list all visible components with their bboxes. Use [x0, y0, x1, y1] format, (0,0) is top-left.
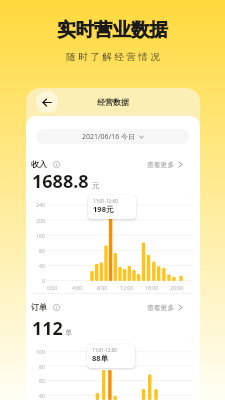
staticText: 112 — [32, 316, 63, 341]
staticText: 200 — [36, 217, 45, 224]
staticText: 随时了解经营情况 — [65, 51, 161, 63]
staticText: 单 — [65, 328, 73, 337]
staticText: 订单 — [31, 302, 47, 312]
staticText: 8:00 — [97, 284, 108, 291]
staticText: 11:01-12:00 — [93, 198, 118, 204]
staticText: 20:00 — [170, 284, 184, 291]
staticText: 元 — [92, 181, 100, 190]
staticText: 经营数据 — [97, 97, 129, 107]
button[interactable]: 查看更多 — [139, 159, 183, 169]
staticText: 16:00 — [145, 284, 159, 291]
staticText: 实时营业数据 — [57, 18, 168, 41]
staticText: 88单 — [92, 353, 109, 363]
staticText: 100 — [36, 348, 45, 355]
staticText: 0:00 — [47, 284, 58, 291]
staticText: 0 — [42, 277, 45, 284]
staticText: 160 — [36, 232, 45, 239]
button[interactable]: 2021/06/16 今日 — [36, 129, 189, 144]
staticText: 80 — [39, 247, 45, 254]
staticText: 2021/06/16 今日 — [82, 132, 136, 142]
staticText: 4:00 — [72, 284, 83, 291]
staticText: 60 — [39, 377, 45, 384]
staticText: 240 — [36, 201, 45, 208]
button[interactable]: 查看更多 — [139, 302, 183, 312]
staticText: 198元 — [93, 204, 114, 214]
staticText: 查看更多 — [147, 160, 175, 169]
staticText: 12:00 — [120, 284, 134, 291]
staticText: 80 — [39, 363, 45, 370]
button[interactable] — [36, 91, 58, 113]
staticText: 查看更多 — [147, 303, 175, 312]
staticText: 收入 — [31, 159, 47, 169]
staticText: 11:01-12:00 — [92, 347, 117, 353]
staticText: 40 — [39, 392, 45, 399]
staticText: 40 — [39, 262, 45, 269]
staticText: 1688.8 — [32, 169, 89, 194]
